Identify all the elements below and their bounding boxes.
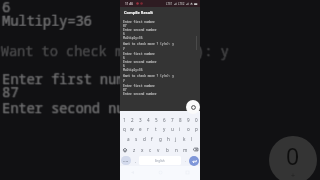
staticText: ): y [196,41,229,60]
staticText: Want to check m [1,40,124,59]
button[interactable]: 1 [120,115,128,124]
button[interactable]: v [154,145,163,154]
button[interactable]: 6 [160,115,168,124]
staticText: Enter first number [123,20,155,24]
staticText: v [157,147,160,153]
button[interactable]: x [138,145,146,154]
button[interactable]: ?123 [121,156,131,165]
staticText: d [143,136,146,142]
staticText: n [175,147,178,153]
button[interactable]: w [128,124,136,133]
staticText: o [187,126,190,132]
staticText: 0 [195,117,198,123]
button[interactable]: r [144,124,152,133]
staticText: g [159,136,162,142]
staticText: Enter second number [123,92,157,96]
button[interactable]: English [139,156,181,165]
staticText: s [135,136,138,142]
button[interactable]: t [152,124,160,133]
button[interactable]: 2 [128,115,136,124]
button[interactable]: z [130,145,138,154]
staticText: Multiply=36 [2,11,92,30]
button[interactable]: p [192,124,200,133]
button[interactable]: 5 [152,115,160,124]
staticText: ): y [195,41,228,60]
button[interactable]: a [124,134,132,143]
button[interactable]: o [184,124,192,133]
staticText: Multiply=36 [1,11,91,30]
staticText: l [191,136,193,142]
button[interactable]: 0 [192,115,200,124]
staticText: q [123,126,126,132]
staticText: 3 [139,117,142,123]
button[interactable]: Record [186,100,200,114]
button[interactable]: s [132,134,140,143]
staticText: Enter first num [3,70,126,89]
staticText: Enter second number [123,28,157,32]
button[interactable]: Shift [120,145,130,154]
button[interactable]: 8 [176,115,184,124]
button[interactable]: Enter [189,156,199,166]
button[interactable]: b [163,145,172,154]
button[interactable]: j [172,134,180,143]
button[interactable]: i [176,124,184,133]
staticText: Enter first num [2,70,125,89]
staticText: i [179,126,181,132]
staticText: 6 [123,64,125,68]
button[interactable]: 7 [168,115,176,124]
staticText: w [130,126,134,132]
staticText: Multiply=36 [2,11,92,30]
staticText: Multiply=36 [2,10,92,29]
button[interactable]: e [136,124,144,133]
button[interactable]: g [156,134,164,143]
staticText: y [123,78,125,82]
staticText: 4 [147,117,150,123]
staticText: Want to check more ? (y/n): y [123,74,175,78]
button[interactable]: c [146,145,154,154]
staticText: 87 [123,88,127,92]
button[interactable]: f [148,134,156,143]
staticText: 5 [155,117,158,123]
staticText: t [155,126,157,132]
staticText: 87 [123,24,127,28]
button[interactable]: n [172,145,181,154]
staticText: y [163,126,166,132]
staticText: e [139,126,142,132]
button[interactable]: y [160,124,168,133]
button[interactable]: h [164,134,172,143]
staticText: 6 [2,0,11,15]
staticText: r [147,126,149,132]
staticText: Enter first num [2,69,125,88]
button[interactable]: u [168,124,176,133]
button[interactable]: 9 [184,115,192,124]
staticText: Enter first num [3,69,126,88]
button[interactable]: q [120,124,128,133]
button[interactable]: d [140,134,148,143]
button[interactable]: l [188,134,196,143]
button[interactable]: 4 [144,115,152,124]
staticText: 6 [3,0,12,16]
staticText: Enter second nu [2,98,125,117]
staticText: p [195,126,198,132]
staticText: 87 [3,82,20,101]
staticText: 6 [3,0,12,17]
staticText: 6 [123,32,125,36]
button[interactable]: Comma [131,156,139,165]
staticText: f [151,136,153,142]
staticText: Want to check more ? (y/n): y [123,42,175,46]
staticText: Want to check m [1,42,124,61]
button[interactable]: k [180,134,188,143]
staticText: ): y [197,42,230,61]
button[interactable]: 3 [136,115,144,124]
button[interactable]: Backspace [190,145,200,154]
staticText: Want to check m [0,42,123,61]
staticText: Enter first number [123,84,155,88]
staticText: Compile Result [124,10,154,15]
button[interactable]: Compile Result [124,7,200,17]
staticText: 0 [286,140,300,171]
button[interactable]: m [181,145,190,154]
